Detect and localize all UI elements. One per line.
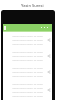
staticText: lorem ipsum dolor sit amet xyxy=(12,38,43,41)
button[interactable]: Share xyxy=(47,54,51,58)
staticText: lorem ipsum dolor sit amet xyxy=(12,74,43,77)
staticText: lorem ipsum dolor sit amet xyxy=(12,54,43,57)
staticText: lorem ipsum dolor sit amet xyxy=(12,82,43,85)
button[interactable]: Share xyxy=(47,88,51,92)
button[interactable]: Share xyxy=(47,38,51,42)
staticText: lorem ipsum dolor sit amet xyxy=(12,86,43,89)
staticText: lorem ipsum dolor sit amet xyxy=(12,70,43,73)
staticText: lorem ipsum dolor sit amet xyxy=(12,58,43,61)
button[interactable]: lorem ipsum dolor sit amet xyxy=(3,48,52,64)
staticText: lorem ipsum dolor sit amet xyxy=(12,34,43,37)
button[interactable]: lorem ipsum dolor sit amet xyxy=(3,80,52,100)
button[interactable]: lorem ipsum dolor sit amet xyxy=(3,32,52,48)
button[interactable]: Share xyxy=(47,70,51,74)
staticText: lorem ipsum dolor sit amet xyxy=(12,42,43,45)
staticText: lorem ipsum dolor sit amet xyxy=(12,94,43,97)
staticText: lorem ipsum dolor sit amet xyxy=(12,50,43,53)
button[interactable]: lorem ipsum dolor sit amet xyxy=(3,64,52,80)
staticText: lorem ipsum dolor sit amet xyxy=(12,90,43,93)
staticText: Yasin Suresi xyxy=(21,3,44,8)
staticText: lorem ipsum dolor sit amet xyxy=(12,66,43,69)
